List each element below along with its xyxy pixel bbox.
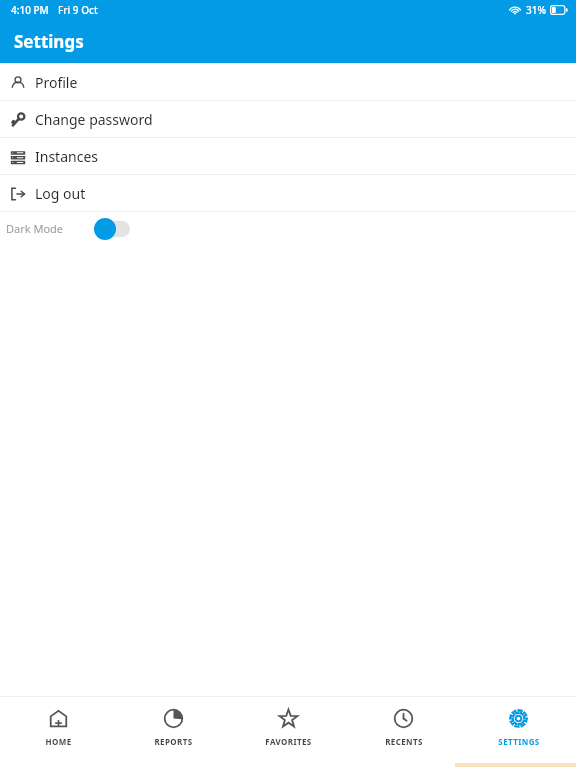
staticText: Profile xyxy=(35,73,78,92)
button[interactable]: Log out xyxy=(0,175,576,211)
button[interactable]: REPORTS xyxy=(116,697,231,747)
staticText: 4:10 PM xyxy=(11,3,49,17)
staticText: Dark Mode xyxy=(6,221,64,236)
button[interactable]: HOME xyxy=(0,697,116,747)
button[interactable]: Profile xyxy=(0,64,576,100)
staticText: Settings xyxy=(14,30,84,53)
button[interactable]: RECENTS xyxy=(346,697,461,747)
button[interactable]: Change password xyxy=(0,101,576,137)
staticText: Fri 9 Oct xyxy=(58,3,98,17)
staticText: Log out xyxy=(35,184,86,203)
button[interactable]: FAVORITES xyxy=(231,697,346,747)
button[interactable]: SETTINGS xyxy=(461,697,576,747)
staticText: HOME xyxy=(45,736,72,747)
button[interactable]: Dark Mode toggle xyxy=(94,218,130,240)
staticText: FAVORITES xyxy=(265,736,312,747)
button[interactable]: Instances xyxy=(0,138,576,174)
staticText: Instances xyxy=(35,147,98,166)
staticText: RECENTS xyxy=(385,736,423,747)
staticText: SETTINGS xyxy=(498,736,540,747)
staticText: REPORTS xyxy=(154,736,193,747)
staticText: Change password xyxy=(35,110,153,129)
button[interactable]: Dark Mode xyxy=(0,212,576,245)
staticText: 31% xyxy=(526,3,546,17)
